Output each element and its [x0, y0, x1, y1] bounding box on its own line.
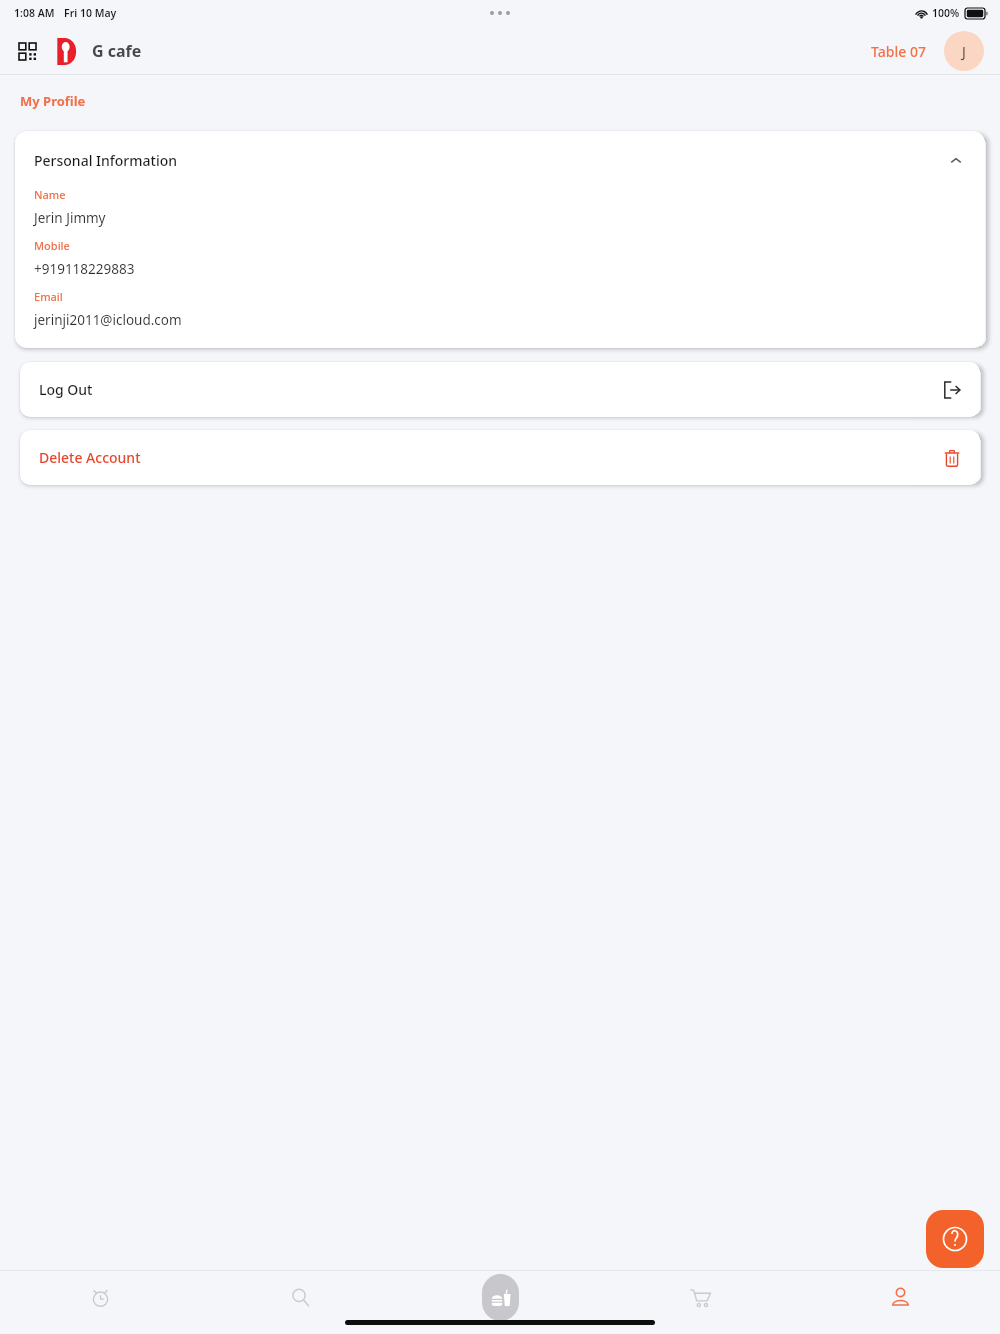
staticText: Delete Account — [39, 448, 141, 467]
staticText: +919118229883 — [34, 260, 135, 278]
button[interactable]: Cart — [600, 1270, 800, 1324]
staticText: Table 07 — [871, 42, 926, 61]
button[interactable]: Recent orders — [0, 1270, 200, 1324]
button[interactable]: Log Out — [20, 362, 980, 417]
staticText: 100% — [932, 6, 960, 20]
button[interactable]: Menu — [400, 1270, 600, 1324]
button[interactable]: Table 07 — [871, 42, 926, 61]
staticText: Mobile — [34, 238, 70, 253]
button[interactable]: Scan QR code — [12, 36, 42, 66]
staticText: Name — [34, 187, 66, 202]
staticText: 1:08 AM — [14, 6, 55, 20]
staticText: Fri 10 May — [64, 6, 117, 20]
staticText: J — [962, 42, 966, 61]
staticText: Personal Information — [34, 151, 178, 170]
staticText: Email — [34, 289, 63, 304]
staticText: jerinji2011@icloud.com — [34, 311, 182, 329]
button[interactable]: Search — [200, 1270, 400, 1324]
button[interactable]: Profile — [800, 1270, 1000, 1324]
button[interactable]: Personal Information — [15, 131, 985, 176]
button[interactable]: Delete Account — [20, 430, 980, 485]
button[interactable]: Account — [944, 31, 984, 71]
button[interactable]: Help — [926, 1210, 984, 1268]
staticText: Log Out — [39, 380, 93, 399]
staticText: G cafe — [92, 40, 142, 62]
staticText: Jerin Jimmy — [34, 209, 106, 227]
staticText: My Profile — [20, 92, 86, 110]
